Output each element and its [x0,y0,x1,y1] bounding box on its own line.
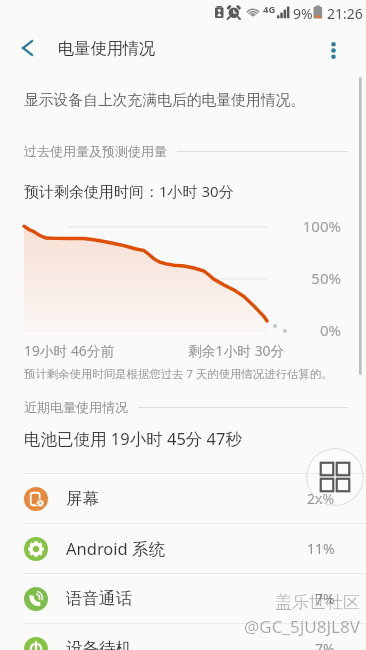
staticText: 过去使用量及预测使用量 [24,143,167,159]
button[interactable]: Android 系统 [0,524,366,573]
staticText: 2x% [307,489,335,508]
staticText: 语音通话 [66,588,132,609]
staticText: Android 系统 [66,537,166,560]
staticText: 电池已使用 19小时 45分 47秒 [24,427,242,450]
staticText: 电量使用情况 [58,38,156,58]
staticText: 19小时 46分前 [24,341,115,360]
button[interactable]: Back [3,24,51,72]
staticText: 7% [315,589,335,608]
staticText: 预计剩余使用时间：1小时 30分 [24,181,234,201]
button[interactable]: 屏幕 [0,474,366,523]
button[interactable]: More options [311,28,355,72]
staticText: 屏幕 [66,488,99,509]
staticText: 显示设备自上次充满电后的电量使用情况。 [24,91,306,110]
staticText: 设备待机 [66,638,132,650]
staticText: 50% [0,268,341,288]
staticText: 预计剩余使用时间是根据您过去 7 天的使用情况进行估算的。 [24,366,333,382]
staticText: 盖乐世社区 [275,592,360,613]
staticText: 剩余1小时 30分 [188,341,285,360]
staticText: 21:26 [327,4,363,23]
button[interactable]: Apps grid [306,448,364,506]
button[interactable]: 语音通话 [0,574,366,623]
staticText: 0% [0,320,341,340]
staticText: 7% [315,639,335,650]
staticText: 11% [307,539,335,558]
staticText: 4G [263,3,276,16]
staticText: @GC_5JU8JL8V [244,615,360,638]
staticText: 100% [0,216,341,236]
button[interactable]: 设备待机 [0,624,366,650]
staticText: 近期电量使用情况 [24,399,128,415]
staticText: 9% [293,4,313,23]
